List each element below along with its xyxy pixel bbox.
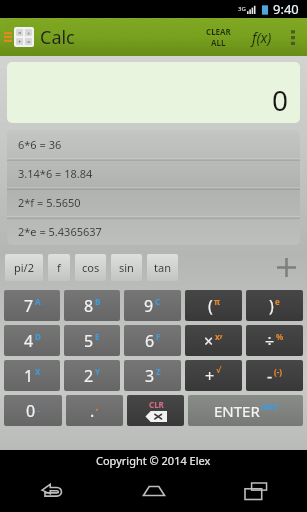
staticText: Y <box>95 366 101 377</box>
staticText: ÷ <box>27 29 31 36</box>
staticText: 0 <box>26 400 36 422</box>
staticText: × <box>204 330 214 352</box>
staticText: √ <box>216 366 222 375</box>
staticText: 0 <box>272 81 289 119</box>
staticText: (-) <box>274 366 282 377</box>
button[interactable]: 5 <box>64 325 120 356</box>
button[interactable]: More options <box>283 22 303 52</box>
staticText: ) <box>269 295 274 317</box>
staticText: ANS <box>261 401 278 412</box>
staticText: Calc <box>40 25 75 50</box>
button[interactable]: 7 <box>4 290 60 321</box>
staticText: 3G <box>238 5 246 13</box>
button[interactable]: 6*6 = 36 <box>7 130 300 159</box>
staticText: 9:40 <box>273 0 299 18</box>
staticText: xʸ <box>215 331 223 342</box>
button[interactable]: Home <box>103 470 205 512</box>
button[interactable]: f <box>48 254 70 281</box>
button[interactable]: 3.14*6 = 18.84 <box>7 159 300 188</box>
button[interactable]: Functions <box>247 22 277 52</box>
staticText: - <box>267 365 273 387</box>
staticText: 2*e = 5.4365637 <box>18 224 102 239</box>
staticText: ÷ <box>265 330 275 352</box>
staticText: sin <box>119 260 134 275</box>
staticText: 3 <box>145 365 155 387</box>
staticText: ALL <box>211 37 226 48</box>
staticText: + <box>205 365 215 387</box>
button[interactable]: × <box>185 325 242 356</box>
staticText: 6 <box>145 330 155 352</box>
staticText: f <box>57 260 61 275</box>
button[interactable]: ( <box>185 290 242 321</box>
button[interactable]: ÷ <box>246 325 303 356</box>
staticText: 2*f = 5.5650 <box>18 195 81 210</box>
button[interactable]: CLEAR <box>200 24 237 50</box>
staticText: e <box>275 296 280 307</box>
staticText: 3.14*6 = 18.84 <box>18 166 93 181</box>
staticText: + <box>18 38 22 45</box>
staticText: B <box>95 296 101 307</box>
button[interactable]: 8 <box>64 290 120 321</box>
button[interactable]: Backspace, clear <box>127 395 184 426</box>
staticText: ( <box>208 295 213 317</box>
staticText: X <box>35 366 41 377</box>
staticText: F <box>156 331 161 342</box>
button[interactable]: 4 <box>4 325 60 356</box>
staticText: E <box>95 331 100 342</box>
staticText: f(x) <box>252 28 272 47</box>
staticText: cos <box>82 260 100 275</box>
staticText: _ <box>37 401 41 412</box>
button[interactable]: Add function <box>269 252 303 282</box>
staticText: 5 <box>84 330 94 352</box>
button[interactable]: pi/2 <box>5 254 43 281</box>
staticText: ENTER <box>214 401 260 421</box>
staticText: CLEAR <box>206 26 231 37</box>
staticText: 6*6 = 36 <box>18 137 62 152</box>
staticText: Copyright © 2014 Elex <box>96 453 211 468</box>
button[interactable]: cos <box>75 254 106 281</box>
button[interactable]: 1 <box>4 360 60 391</box>
button[interactable]: Back <box>0 470 103 512</box>
staticText: C <box>155 296 161 307</box>
staticText: % <box>276 331 284 342</box>
button[interactable]: . <box>66 395 123 426</box>
staticText: D <box>35 331 41 342</box>
staticText: pi/2 <box>14 260 34 275</box>
staticText: = <box>27 38 31 45</box>
staticText: A <box>35 296 41 307</box>
staticText: 7 <box>24 295 34 317</box>
button[interactable]: ENTER <box>188 395 303 426</box>
staticText: , <box>96 401 99 412</box>
button[interactable]: sin <box>111 254 142 281</box>
button[interactable]: 2 <box>64 360 120 391</box>
staticText: . <box>90 400 95 422</box>
staticText: π <box>214 296 220 307</box>
staticText: 9 <box>144 295 154 317</box>
button[interactable]: 6 <box>124 325 181 356</box>
staticText: CLR <box>149 399 164 410</box>
staticText: 4 <box>24 330 34 352</box>
staticText: × <box>18 29 22 36</box>
staticText: 2 <box>84 365 94 387</box>
button[interactable]: + <box>185 360 242 391</box>
button[interactable]: 9 <box>124 290 181 321</box>
button[interactable]: 3 <box>124 360 181 391</box>
button[interactable]: tan <box>147 254 178 281</box>
button[interactable]: ) <box>246 290 303 321</box>
button[interactable]: 2*e = 5.4365637 <box>7 217 300 245</box>
staticText: tan <box>154 260 171 275</box>
button[interactable]: 2*f = 5.5650 <box>7 188 300 217</box>
button[interactable]: 0 <box>7 62 300 123</box>
button[interactable]: Recent apps <box>205 470 307 512</box>
button[interactable]: 0 <box>4 395 62 426</box>
button[interactable]: - <box>246 360 303 391</box>
staticText: Z <box>156 366 161 377</box>
button[interactable]: Calc <box>14 27 34 47</box>
staticText: 1 <box>24 365 34 387</box>
staticText: 8 <box>84 295 94 317</box>
